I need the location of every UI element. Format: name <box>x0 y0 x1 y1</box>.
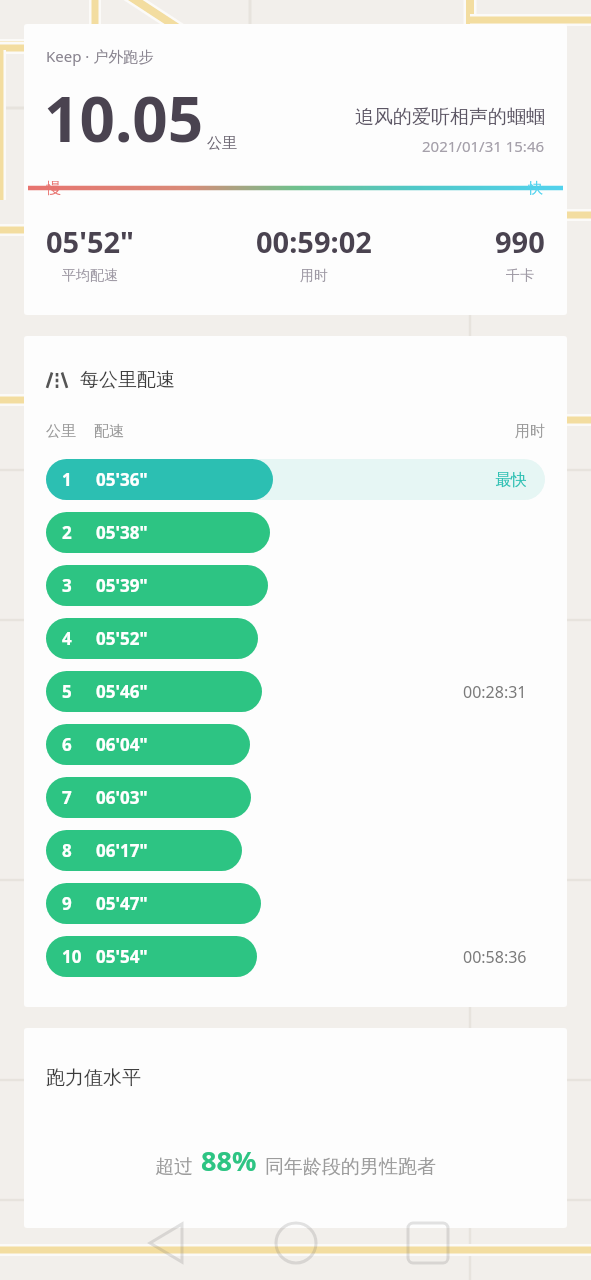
button[interactable]: 4 <box>46 618 545 659</box>
staticText: 10 <box>62 945 82 968</box>
staticText: 06'03" <box>96 786 148 809</box>
staticText: 10.05 <box>44 76 204 160</box>
staticText: 配速 <box>94 422 124 441</box>
staticText: 公里 <box>46 422 76 441</box>
staticText: 05'46" <box>96 680 148 703</box>
staticText: 05'52" <box>96 627 148 650</box>
staticText: 9 <box>62 892 72 915</box>
staticText: 超过 <box>155 1155 193 1179</box>
staticText: 每公里配速 <box>80 368 175 392</box>
button[interactable]: 1 <box>46 459 545 500</box>
button[interactable]: 8 <box>46 830 545 871</box>
staticText: 05'54" <box>96 945 148 968</box>
staticText: 05'52" <box>46 222 134 261</box>
button[interactable]: 3 <box>46 565 545 606</box>
staticText: 用时 <box>515 422 545 441</box>
staticText: 00:59:02 <box>256 222 372 261</box>
button[interactable]: 10 <box>46 936 545 977</box>
staticText: 千卡 <box>506 267 534 285</box>
staticText: 平均配速 <box>62 267 118 285</box>
button[interactable]: 7 <box>46 777 545 818</box>
staticText: 00:28:31 <box>463 681 527 703</box>
staticText: 公里 <box>207 134 237 153</box>
staticText: 06'17" <box>96 839 148 862</box>
staticText: 7 <box>62 786 72 809</box>
button[interactable]: 9 <box>46 883 545 924</box>
button[interactable]: 6 <box>46 724 545 765</box>
staticText: 05'38" <box>96 521 148 544</box>
staticText: 快 <box>528 179 543 198</box>
staticText: 用时 <box>300 267 328 285</box>
staticText: 4 <box>62 627 72 650</box>
staticText: 05'36" <box>96 468 148 491</box>
staticText: 8 <box>62 839 72 862</box>
staticText: 88% <box>201 1142 257 1179</box>
staticText: 05'47" <box>96 892 148 915</box>
staticText: 6 <box>62 733 72 756</box>
staticText: 00:58:36 <box>463 946 527 968</box>
button[interactable]: 5 <box>46 671 545 712</box>
staticText: 3 <box>62 574 72 597</box>
staticText: 追风的爱听相声的蝈蝈 <box>355 105 545 129</box>
staticText: 06'04" <box>96 733 148 756</box>
staticText: 2021/01/31 15:46 <box>422 136 545 156</box>
staticText: 05'39" <box>96 574 148 597</box>
staticText: 同年龄段的男性跑者 <box>265 1155 436 1179</box>
staticText: 5 <box>62 680 72 703</box>
staticText: 990 <box>495 222 545 261</box>
staticText: 1 <box>62 468 72 491</box>
staticText: 2 <box>62 521 72 544</box>
staticText: 最快 <box>495 470 527 490</box>
button[interactable]: 2 <box>46 512 545 553</box>
staticText: 跑力值水平 <box>46 1066 141 1090</box>
staticText: 慢 <box>46 179 61 198</box>
staticText: Keep · 户外跑步 <box>46 46 154 66</box>
